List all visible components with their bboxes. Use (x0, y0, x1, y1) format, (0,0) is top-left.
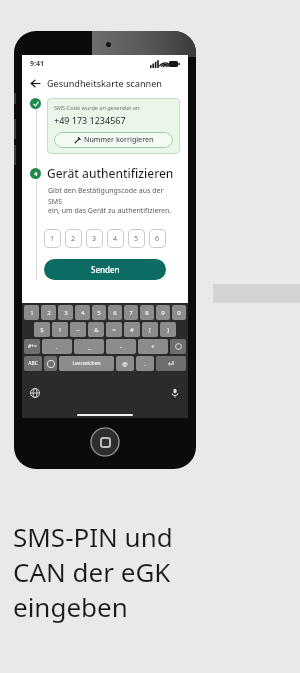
button[interactable]: _ (74, 339, 104, 354)
button[interactable]: 3 (58, 305, 73, 320)
staticText: Gesundheitskarte scannen (47, 77, 162, 89)
staticText: 9 (161, 309, 165, 317)
button[interactable]: Voice input (170, 388, 180, 398)
button[interactable]: . (42, 339, 72, 354)
staticText: + (151, 343, 155, 351)
staticText: Gibt den Bestätigungscode aus der SMS (48, 186, 178, 206)
button[interactable]: @ (116, 356, 134, 371)
staticText: . (144, 360, 146, 368)
staticText: 7 (129, 309, 133, 317)
staticText: $ (40, 326, 44, 334)
button[interactable]: 4 (107, 229, 124, 248)
button[interactable]: $ (34, 322, 50, 337)
staticText: ein, um das Gerät zu authentifizieren. (48, 206, 172, 216)
button[interactable]: 8 (140, 305, 154, 320)
button[interactable]: 9 (156, 305, 170, 320)
button[interactable]: ! (52, 322, 68, 337)
button[interactable]: + (138, 339, 168, 354)
staticText: . (56, 343, 58, 351)
button[interactable]: 4 (75, 305, 90, 320)
staticText: 3 (64, 309, 68, 317)
staticText: eingeben (13, 589, 128, 624)
staticText: _ (88, 343, 91, 351)
staticText: Nummer korrigieren (84, 135, 154, 145)
button[interactable]: 3 (86, 229, 103, 248)
button[interactable]: Back (30, 72, 188, 94)
button[interactable]: 2 (41, 305, 56, 320)
staticText: 1 (50, 234, 55, 244)
button[interactable]: # (124, 322, 140, 337)
button[interactable]: = (106, 322, 122, 337)
button[interactable]: ~ (70, 322, 86, 337)
button[interactable]: #+= (24, 339, 40, 354)
button[interactable]: Emoji (44, 356, 57, 371)
staticText: & (94, 326, 99, 334)
staticText: ] (167, 326, 169, 334)
button[interactable]: Senden (44, 259, 166, 280)
button[interactable]: Nummer korrigieren (54, 132, 173, 148)
button[interactable]: 6 (108, 305, 122, 320)
button[interactable]: 5 (128, 229, 145, 248)
staticText: [ (149, 326, 151, 334)
button[interactable]: 1 (44, 229, 61, 248)
staticText: ! (59, 326, 61, 334)
staticText: +49 173 1234567 (54, 114, 126, 126)
button[interactable]: - (106, 339, 136, 354)
button[interactable]: 7 (124, 305, 138, 320)
staticText: 2 (71, 234, 76, 244)
staticText: 5 (97, 309, 101, 317)
button[interactable]: Language (30, 388, 40, 398)
staticText: 6 (113, 309, 117, 317)
staticText: = (112, 326, 116, 334)
button[interactable]: Enter (156, 356, 186, 371)
staticText: Gerät authentifizieren (47, 165, 174, 181)
staticText: 4 (113, 234, 118, 244)
button[interactable]: [ (142, 322, 158, 337)
button[interactable]: . (136, 356, 154, 371)
button[interactable]: 1 (24, 305, 39, 320)
button[interactable]: Backspace (170, 339, 186, 354)
staticText: 4 (81, 309, 85, 317)
staticText: # (130, 326, 134, 334)
staticText: SMS-PIN und (13, 519, 173, 554)
staticText: ABC (28, 360, 38, 367)
staticText: Senden (91, 264, 120, 275)
button[interactable]: 0 (172, 305, 186, 320)
staticText: #+= (28, 343, 37, 350)
staticText: ⏎ (168, 360, 174, 368)
staticText: @ (122, 360, 128, 368)
staticText: 1 (30, 309, 34, 317)
staticText: 4 (34, 170, 38, 178)
staticText: CAN der eGK (13, 554, 171, 589)
staticText: 5 (134, 234, 139, 244)
staticText: SMS-Code wurde an gesendet an: (54, 104, 141, 111)
button[interactable]: ] (160, 322, 176, 337)
staticText: 8 (145, 309, 149, 317)
button[interactable]: 6 (149, 229, 166, 248)
staticText: 6 (155, 234, 160, 244)
staticText: ~ (76, 326, 80, 334)
staticText: 0 (177, 309, 181, 317)
staticText: 2 (47, 309, 51, 317)
button[interactable]: 5 (92, 305, 106, 320)
button[interactable]: Leerzeichen (59, 356, 114, 371)
staticText: 3 (92, 234, 97, 244)
staticText: 9:41 (30, 59, 44, 69)
button[interactable]: ABC (24, 356, 42, 371)
button[interactable]: & (88, 322, 104, 337)
button[interactable]: 2 (65, 229, 82, 248)
staticText: Leerzeichen (72, 360, 101, 367)
staticText: - (120, 343, 122, 351)
